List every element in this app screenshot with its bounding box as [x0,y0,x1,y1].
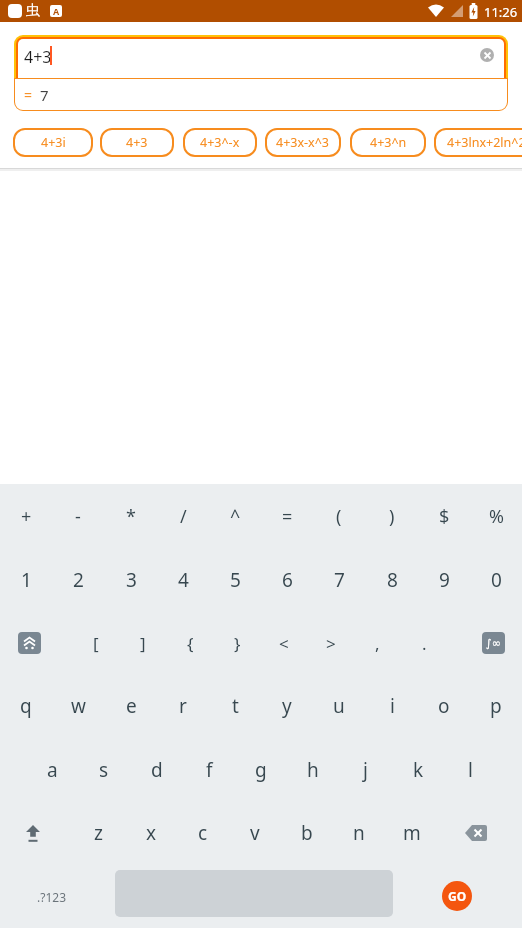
staticText: c [198,820,208,846]
button[interactable]: 3 [105,558,157,602]
button[interactable]: e [105,684,157,728]
button[interactable]: z [72,811,124,855]
button[interactable]: < [258,621,310,665]
staticText: w [71,693,86,719]
staticText: * [126,504,136,529]
button[interactable]: 4+3 [14,35,508,78]
button[interactable]: 2 [52,558,104,602]
button[interactable]: v [229,811,281,855]
staticText: 1 [21,567,32,593]
staticText: s [99,757,109,783]
button[interactable] [462,821,490,845]
button[interactable]: 1 [0,558,52,602]
staticText: = [282,504,293,529]
button[interactable]: a [26,748,78,792]
staticText: 4+3^n [370,134,407,151]
button[interactable]: = [261,494,313,538]
staticText: y [282,693,292,719]
staticText: + [21,504,32,529]
button[interactable]: j [339,748,391,792]
button[interactable]: 7 [313,558,365,602]
staticText: 4+3 [24,46,52,68]
button[interactable]: 4+3i [13,128,93,157]
staticText: $ [439,504,450,529]
button[interactable]: d [131,748,183,792]
button[interactable]: h [287,748,339,792]
button[interactable]: [ [70,621,122,665]
button[interactable]: k [392,748,444,792]
button[interactable]: . [398,621,450,665]
staticText: b [301,820,313,846]
button[interactable]: i [366,684,418,728]
button[interactable]: y [261,684,313,728]
button[interactable]: 4+3 [100,128,174,157]
button[interactable]: ∫∞ [482,632,505,654]
staticText: } [234,632,241,655]
button[interactable]: % [470,494,522,538]
button[interactable]: 8 [366,558,418,602]
button[interactable]: 6 [261,558,313,602]
button[interactable]: 4+3x-x^3 [265,128,341,157]
button[interactable]: o [418,684,470,728]
button[interactable]: 4 [157,558,209,602]
button[interactable]: + [0,494,52,538]
button[interactable]: g [235,748,287,792]
button[interactable]: $ [418,494,470,538]
staticText: / [180,504,187,529]
button[interactable]: 5 [209,558,261,602]
button[interactable]: } [211,621,263,665]
staticText: n [353,820,365,846]
button[interactable]: ^ [209,494,261,538]
button[interactable]: , [351,621,403,665]
button[interactable]: b [281,811,333,855]
button[interactable]: / [157,494,209,538]
staticText: t [232,693,239,719]
staticText: { [187,632,194,655]
button[interactable]: r [157,684,209,728]
button[interactable]: 9 [418,558,470,602]
button[interactable]: p [470,684,522,728]
button[interactable] [20,821,46,845]
button[interactable]: = [14,78,508,111]
button[interactable]: ( [313,494,365,538]
button[interactable]: w [52,684,104,728]
button[interactable]: 4+3^n [350,128,426,157]
button[interactable]: u [313,684,365,728]
staticText: m [403,820,421,846]
button[interactable]: n [333,811,385,855]
staticText: < [279,632,289,655]
staticText: o [438,693,450,719]
staticText: z [94,820,103,846]
button[interactable]: x [125,811,177,855]
button[interactable]: * [105,494,157,538]
button[interactable]: t [209,684,261,728]
button[interactable]: ] [117,621,169,665]
staticText: 虫 [26,2,40,20]
button[interactable]: .?123 [24,881,80,913]
button[interactable]: c [177,811,229,855]
button[interactable] [480,48,494,62]
button[interactable]: 0 [470,558,522,602]
staticText: ∫∞ [486,637,501,650]
button[interactable]: l [444,748,496,792]
button[interactable]: f [183,748,235,792]
staticText: u [333,693,345,719]
staticText: ) [389,504,395,529]
staticText: f [206,757,213,783]
button[interactable] [18,632,41,654]
staticText: 2 [73,567,84,593]
button[interactable]: q [0,684,52,728]
button[interactable]: m [386,811,438,855]
button[interactable]: ) [366,494,418,538]
button[interactable]: 4+3^-x [183,128,257,157]
button[interactable]: > [305,621,357,665]
staticText: j [363,757,368,783]
button[interactable]: 4+3lnx+2ln^2x [434,128,522,157]
staticText: d [151,757,163,783]
button[interactable]: GO [442,881,472,911]
button[interactable]: - [52,494,104,538]
staticText: i [390,693,395,719]
button[interactable]: s [78,748,130,792]
button[interactable]: { [164,621,216,665]
